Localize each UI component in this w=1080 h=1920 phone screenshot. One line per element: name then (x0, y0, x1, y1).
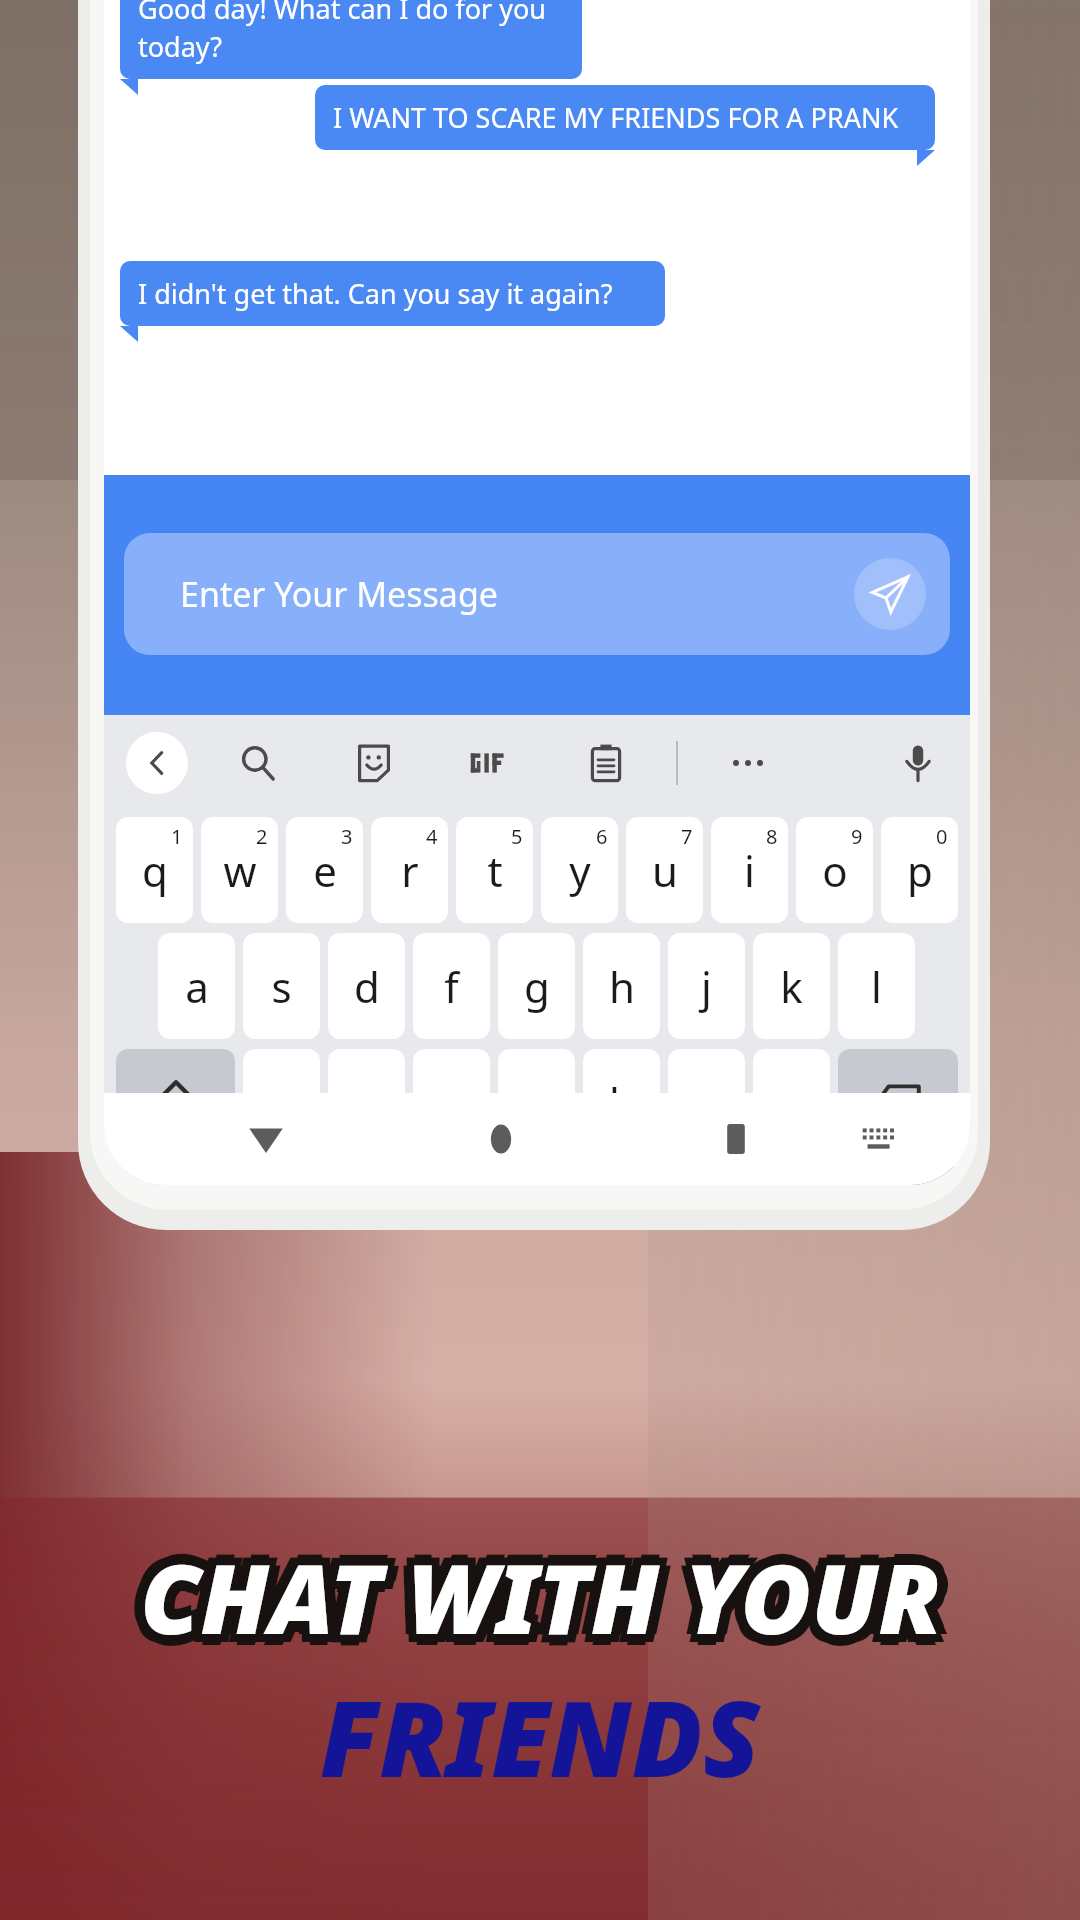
button[interactable]: Stickers (344, 733, 404, 793)
staticText: 0 (936, 823, 948, 850)
button[interactable]: o (796, 817, 873, 923)
staticText: 8 (766, 823, 778, 850)
staticText: l (871, 958, 882, 1015)
staticText: p (907, 842, 933, 899)
staticText: Enter Your Message (180, 571, 499, 617)
staticText: CHAT WITH YOUR (132, 1539, 933, 1670)
staticText: 5 (511, 823, 523, 850)
staticText: 3 (341, 823, 353, 850)
staticText: Good day! What can I do for you today? (138, 0, 564, 65)
button[interactable]: Enter (847, 1165, 958, 1185)
button[interactable]: GIF (460, 733, 520, 793)
button[interactable]: Recents (694, 1097, 778, 1181)
staticText: w (223, 842, 257, 899)
button[interactable]: More options (718, 733, 778, 793)
staticText: CHAT WITH YOUR (129, 1531, 930, 1662)
button[interactable]: z (243, 1049, 320, 1155)
button[interactable]: Back (126, 732, 188, 794)
staticText: CHAT WITH YOUR (148, 1523, 949, 1654)
button[interactable]: Back (224, 1097, 308, 1181)
staticText: CHAT WITH YOUR (140, 1531, 941, 1662)
button[interactable]: d (328, 933, 405, 1039)
staticText: d (354, 958, 380, 1015)
staticText: g (524, 958, 550, 1015)
staticText: f (444, 958, 459, 1015)
button[interactable]: Good day! What can I do for you today? (120, 0, 582, 79)
staticText: CHAT WITH YOUR (140, 1542, 941, 1673)
staticText: j (701, 958, 712, 1015)
button[interactable]: u (626, 817, 703, 923)
button[interactable]: Voice input (888, 733, 948, 793)
button[interactable]: Search (228, 733, 288, 793)
staticText: y (569, 842, 591, 899)
staticText: 4 (426, 823, 438, 850)
staticText: I didn't get that. Can you say it again? (138, 275, 613, 312)
staticText: FRIENDS (320, 1666, 760, 1808)
button[interactable]: f (413, 933, 490, 1039)
button[interactable]: ?123 (116, 1165, 258, 1185)
button[interactable]: l (838, 933, 915, 1039)
button[interactable]: s (243, 933, 320, 1039)
button[interactable]: Home (459, 1097, 543, 1181)
button[interactable]: Enter Your Message (124, 533, 950, 655)
staticText: CHAT WITH YOUR (148, 1539, 949, 1670)
button[interactable]: b (583, 1049, 660, 1155)
staticText: s (271, 958, 292, 1015)
button[interactable]: i (711, 817, 788, 923)
button[interactable]: Change keyboard (837, 1097, 921, 1181)
staticText: 7 (681, 823, 693, 850)
staticText: q (142, 842, 168, 899)
button[interactable]: v (498, 1049, 575, 1155)
staticText: k (780, 958, 803, 1015)
staticText: CHAT WITH YOUR (132, 1523, 933, 1654)
staticText: 2 (256, 823, 268, 850)
staticText: I WANT TO SCARE MY FRIENDS FOR A PRANK (333, 99, 899, 136)
button[interactable]: r (371, 817, 448, 923)
staticText: a (185, 958, 209, 1015)
button[interactable]: a (158, 933, 235, 1039)
staticText: o (822, 842, 848, 899)
button[interactable]: Send (854, 558, 926, 630)
button[interactable]: p (881, 817, 958, 923)
staticText: 6 (596, 823, 608, 850)
button[interactable]: g (498, 933, 575, 1039)
button[interactable]: Shift (116, 1049, 235, 1155)
button[interactable]: y (541, 817, 618, 923)
button[interactable]: t (456, 817, 533, 923)
staticText: 9 (851, 823, 863, 850)
button[interactable]: I WANT TO SCARE MY FRIENDS FOR A PRANK (315, 85, 935, 150)
staticText: CHAT WITH YOUR (140, 1520, 941, 1651)
staticText: 1 (171, 823, 183, 850)
button[interactable]: j (668, 933, 745, 1039)
button[interactable]: h (583, 933, 660, 1039)
staticText: b (609, 1074, 635, 1131)
button[interactable]: Clipboard (576, 733, 636, 793)
button[interactable]: Backspace (838, 1049, 958, 1155)
staticText: e (313, 842, 337, 899)
button[interactable]: e (286, 817, 363, 923)
button[interactable]: w (201, 817, 278, 923)
staticText: u (652, 842, 678, 899)
button[interactable]: q (116, 817, 193, 923)
button[interactable]: k (753, 933, 830, 1039)
staticText: t (487, 842, 503, 899)
staticText: r (401, 842, 419, 899)
staticText: h (609, 958, 635, 1015)
button[interactable]: n (668, 1049, 745, 1155)
button[interactable]: I didn't get that. Can you say it again? (120, 261, 665, 326)
staticText: z (272, 1074, 292, 1131)
staticText: i (744, 842, 755, 899)
